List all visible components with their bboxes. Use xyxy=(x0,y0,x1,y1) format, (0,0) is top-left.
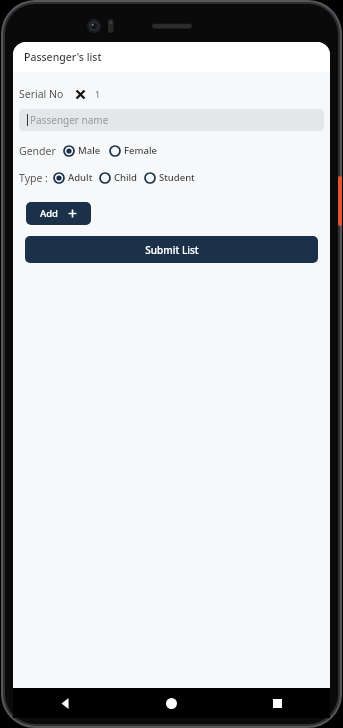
staticText: Student xyxy=(159,171,195,184)
staticText: 1 xyxy=(95,88,101,100)
button[interactable]: Recent apps xyxy=(224,688,330,718)
button[interactable]: Female xyxy=(108,143,158,158)
button[interactable]: Male xyxy=(62,143,102,158)
staticText: Passenger name xyxy=(30,113,109,127)
staticText: Child xyxy=(114,171,138,184)
staticText: Gender xyxy=(19,144,56,158)
button[interactable]: Passenger name xyxy=(19,109,324,131)
button[interactable]: Home xyxy=(118,688,224,718)
button[interactable]: Student xyxy=(143,170,196,185)
staticText: Serial No xyxy=(19,87,64,101)
button[interactable]: Back xyxy=(13,688,118,718)
button[interactable]: Add xyxy=(26,202,91,225)
staticText: Male xyxy=(78,144,101,157)
staticText: Passenger's list xyxy=(24,50,102,64)
button[interactable]: Adult xyxy=(52,170,94,185)
button[interactable]: Submit List xyxy=(25,236,318,263)
staticText: Adult xyxy=(68,171,93,184)
staticText: Add xyxy=(40,207,59,220)
button[interactable]: Child xyxy=(98,170,139,185)
staticText: Female xyxy=(124,144,157,157)
staticText: Type : xyxy=(19,171,48,185)
staticText: Submit List xyxy=(145,243,199,257)
button[interactable]: Remove passenger xyxy=(72,86,88,102)
